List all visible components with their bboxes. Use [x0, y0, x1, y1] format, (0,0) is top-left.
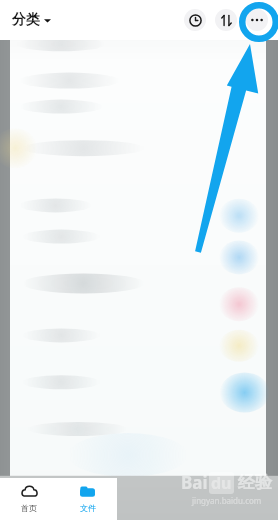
button[interactable]: History [184, 9, 206, 31]
button[interactable]: Sort [215, 9, 237, 31]
staticText: 首页 [21, 503, 37, 513]
button[interactable]: 分类 [10, 7, 53, 33]
button[interactable]: More options [246, 9, 268, 31]
button[interactable]: 文件 [58, 478, 117, 520]
button[interactable]: 首页 [0, 478, 58, 520]
staticText: jingyan.baidu.com [192, 495, 262, 506]
staticText: 经验 [238, 472, 272, 493]
staticText: 文件 [80, 503, 96, 513]
staticText: du [211, 472, 232, 494]
staticText: 分类 [12, 11, 40, 29]
staticText: Bai [181, 471, 208, 494]
